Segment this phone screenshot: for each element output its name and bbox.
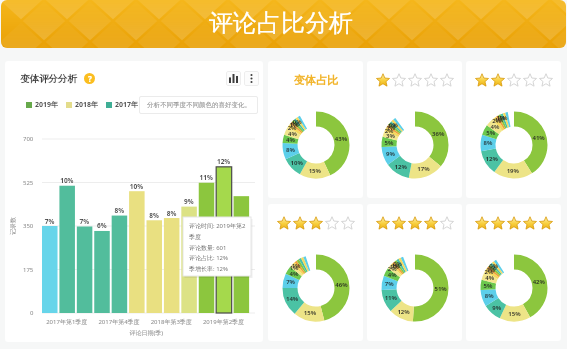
staticText: ? (88, 73, 92, 84)
button[interactable] (466, 204, 561, 341)
button[interactable] (466, 61, 561, 198)
button[interactable]: 变体占比 (268, 61, 363, 198)
staticText: 2017年 (115, 100, 139, 110)
staticText: 评论占比分析 (209, 8, 353, 38)
button[interactable]: Help (84, 73, 95, 84)
button[interactable] (268, 204, 363, 341)
staticText: 2019年 (35, 100, 59, 110)
staticText: 分析不同季度不同颜色的喜好变化。 (147, 101, 251, 109)
staticText: 2018年 (75, 100, 99, 110)
button[interactable]: 2017年 (106, 100, 139, 110)
button[interactable] (367, 204, 462, 341)
button[interactable] (367, 61, 462, 198)
staticText: 变体评分分析 (20, 73, 77, 85)
button[interactable]: 2018年 (66, 100, 99, 110)
button[interactable]: Chart type (226, 71, 241, 86)
staticText: 变体占比 (294, 73, 338, 87)
button[interactable]: More options (244, 71, 259, 86)
button[interactable]: 2019年 (26, 100, 59, 110)
